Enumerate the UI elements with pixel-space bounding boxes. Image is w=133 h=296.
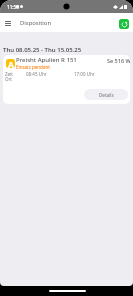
button[interactable]: Open navigation menu — [1, 16, 15, 30]
button[interactable]: Synchronise — [119, 19, 129, 29]
staticText: 11:50 — [7, 4, 19, 10]
staticText: 17:00 Uhr — [74, 71, 95, 77]
staticText: Preisht Apulien R 151 — [16, 56, 77, 64]
staticText: Se 516 W — [107, 57, 130, 64]
staticText: Einsatz pendent — [16, 64, 50, 70]
staticText: 08:45 Uhr — [26, 71, 47, 77]
button[interactable]: A — [3, 55, 130, 104]
staticText: Ort — [5, 76, 12, 82]
button[interactable]: Details — [84, 89, 128, 100]
staticText: Thu 08.05.25 - Thu 15.05.25 — [3, 46, 82, 54]
staticText: Disposition — [20, 19, 52, 27]
staticText: Details — [99, 92, 114, 98]
staticText: Zeit — [5, 71, 13, 77]
staticText: A — [8, 59, 14, 68]
